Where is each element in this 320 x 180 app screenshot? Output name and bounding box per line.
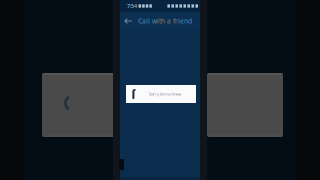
button[interactable]: Sorry let me know <box>126 85 196 103</box>
staticText: Call with a friend <box>138 17 192 25</box>
staticText: 7:54 <box>127 2 137 10</box>
staticText: Sorry let me know <box>149 91 181 97</box>
button[interactable]: Back <box>122 12 134 30</box>
